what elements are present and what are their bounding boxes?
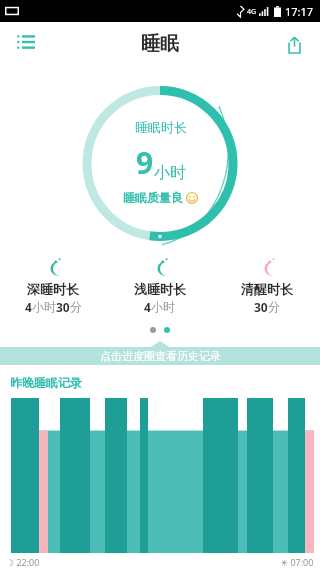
staticText: ☽ 22:00 [6,556,40,566]
staticText: 4G [247,7,257,17]
staticText: 小时 [154,163,186,183]
button[interactable]: Share [278,28,310,60]
button[interactable] [150,327,156,333]
staticText: 4 [25,299,32,315]
staticText: 昨晚睡眠记录 [10,375,82,390]
staticText: 30 [56,299,70,315]
button[interactable]: 浅睡时长 [106,255,213,317]
staticText: ☀ 07:00 [280,556,314,566]
staticText: 分 [268,299,280,314]
button[interactable]: 清醒时长 [213,255,320,317]
staticText: 点击进度圈查看历史记录 [100,349,221,363]
button[interactable]: 点击进度圈查看历史记录 [0,347,320,365]
staticText: 4 [144,299,151,315]
staticText: 睡眠质量良 [123,190,183,205]
staticText: 30 [254,299,268,315]
staticText: 睡眠时长 [135,119,187,135]
button[interactable]: 深睡时长 [0,255,106,317]
staticText: 小时 [151,299,175,314]
staticText: 小时 [32,299,56,314]
staticText: 深睡时长 [27,281,79,297]
staticText: 17:17 [285,4,314,19]
staticText: 分 [70,299,82,314]
staticText: 清醒时长 [241,281,293,297]
staticText: 浅睡时长 [134,281,186,297]
button[interactable] [164,327,170,333]
staticText: 睡眠 [141,32,179,56]
staticText: 9 [136,142,154,183]
button[interactable]: Menu [10,28,42,60]
